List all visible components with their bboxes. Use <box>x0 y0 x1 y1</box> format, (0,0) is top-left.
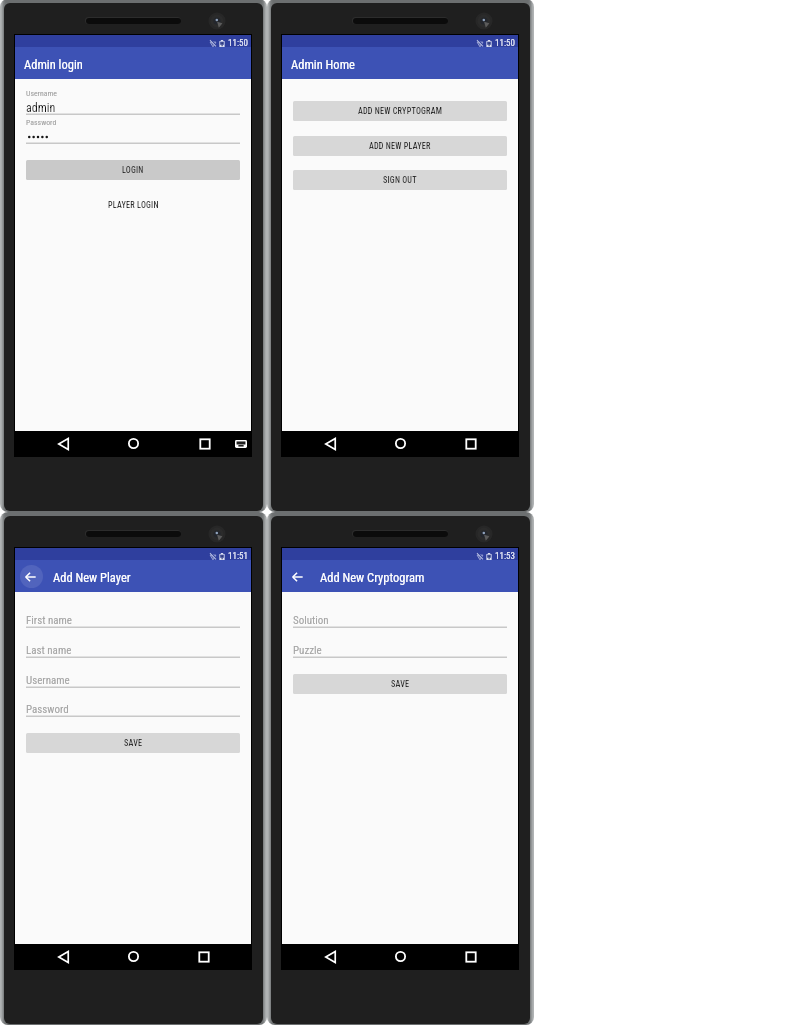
button[interactable]: Back <box>325 951 336 963</box>
button[interactable]: LOGIN <box>26 160 240 180</box>
button[interactable]: Change keyboard <box>235 440 247 448</box>
staticText: 11:53 <box>495 551 515 562</box>
staticText: Last name <box>26 644 72 657</box>
staticText: 11:51 <box>228 551 248 562</box>
staticText: SAVE <box>391 679 410 689</box>
staticText: Add New Cryptogram <box>320 570 425 585</box>
button[interactable]: Home <box>395 438 406 449</box>
button[interactable]: Home <box>128 951 139 962</box>
staticText: ADD NEW CRYPTOGRAM <box>358 106 443 116</box>
staticText: LOGIN <box>122 165 144 175</box>
staticText: SAVE <box>124 738 143 748</box>
staticText: SIGN OUT <box>383 175 417 185</box>
staticText: PLAYER LOGIN <box>108 200 159 210</box>
button[interactable]: ADD NEW PLAYER <box>293 136 507 156</box>
staticText: admin <box>26 101 56 115</box>
button[interactable]: Navigate up <box>20 565 43 588</box>
staticText: Solution <box>293 614 329 627</box>
staticText: Admin login <box>24 57 83 72</box>
button[interactable]: Recent apps <box>199 952 209 962</box>
staticText: 11:50 <box>228 38 248 49</box>
button[interactable]: SAVE <box>26 733 240 753</box>
staticText: 11:50 <box>495 38 515 49</box>
staticText: Username <box>26 674 70 687</box>
button[interactable]: Home <box>395 951 406 962</box>
staticText: Password <box>26 703 69 716</box>
button[interactable]: Back <box>58 951 69 963</box>
button[interactable]: Navigate up <box>287 565 310 588</box>
staticText: Username <box>26 89 58 98</box>
button[interactable]: ADD NEW CRYPTOGRAM <box>293 101 507 121</box>
button[interactable]: Recent apps <box>466 439 476 449</box>
button[interactable]: SAVE <box>293 674 507 694</box>
button[interactable]: Recent apps <box>200 439 210 449</box>
staticText: Password <box>26 118 57 127</box>
staticText: ADD NEW PLAYER <box>369 141 431 151</box>
button[interactable]: Back <box>58 438 69 450</box>
button[interactable]: Home <box>128 438 139 449</box>
staticText: Admin Home <box>291 57 355 72</box>
staticText: Add New Player <box>53 570 131 585</box>
button[interactable]: Back <box>325 438 336 450</box>
button[interactable]: PLAYER LOGIN <box>100 196 167 214</box>
staticText: First name <box>26 614 72 627</box>
staticText: Puzzle <box>293 644 322 657</box>
button[interactable]: SIGN OUT <box>293 170 507 190</box>
button[interactable]: Recent apps <box>466 952 476 962</box>
